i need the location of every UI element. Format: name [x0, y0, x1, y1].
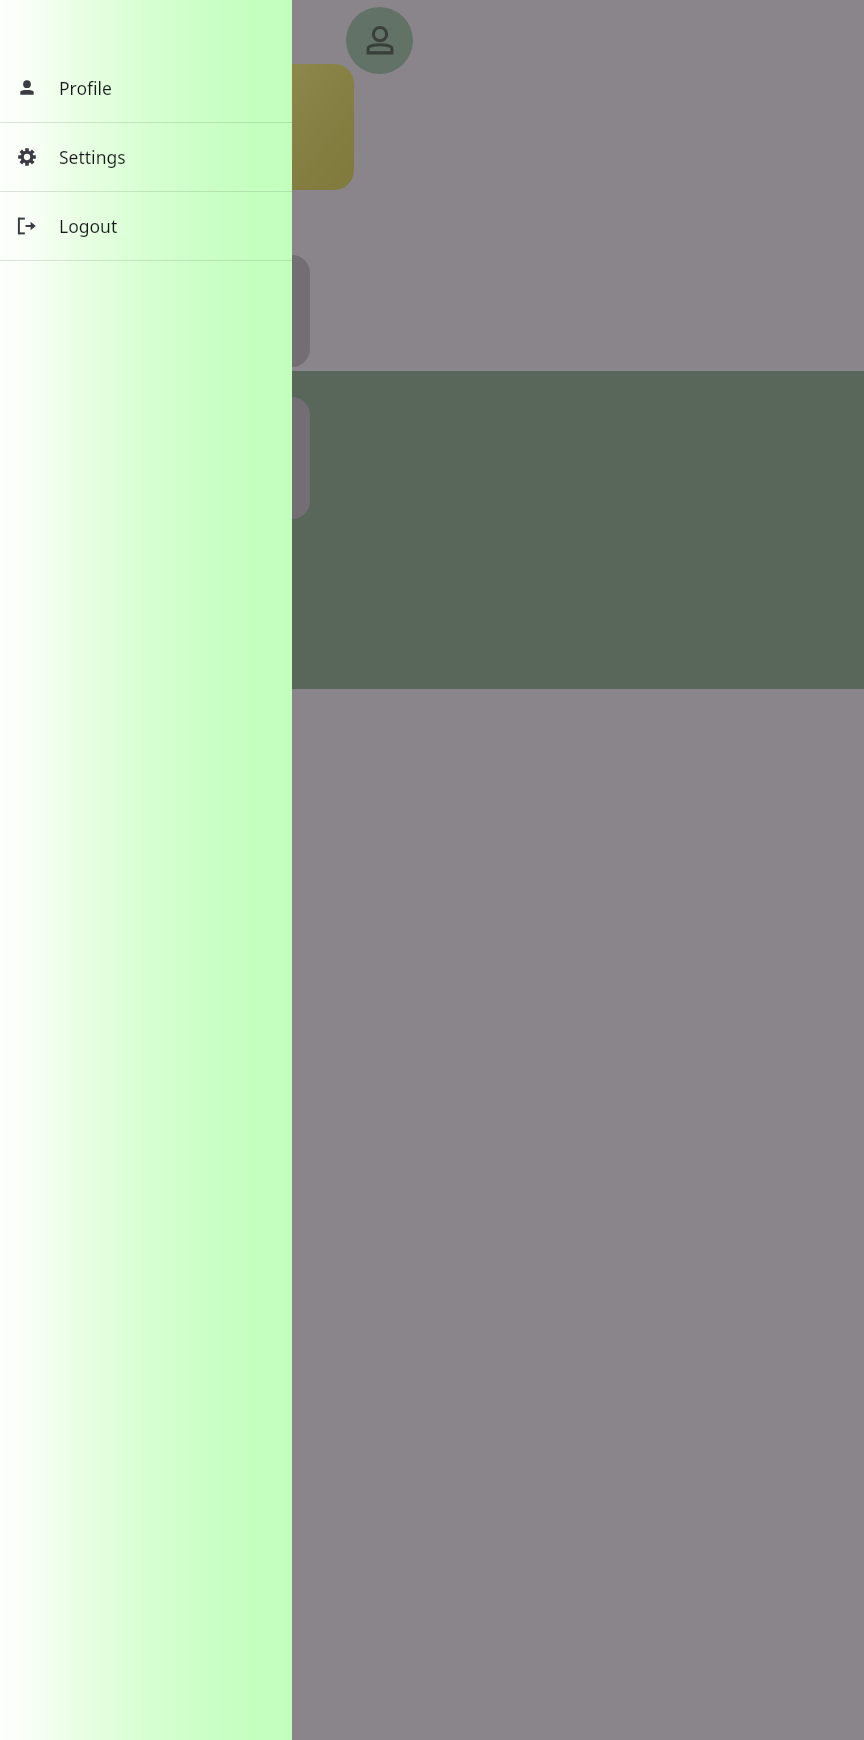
- button[interactable]: Entry: [150, 397, 310, 519]
- staticText: Profile: [59, 76, 112, 100]
- button[interactable]: Logout: [0, 192, 292, 260]
- button[interactable]: Account: [346, 7, 413, 74]
- button[interactable]: Settings: [0, 123, 292, 191]
- button[interactable]: Home Balance: [150, 255, 310, 367]
- staticText: Settings: [59, 145, 126, 169]
- button[interactable]: Profile: [0, 54, 292, 122]
- staticText: Home Balance: [189, 284, 272, 339]
- button[interactable]: QR pass: [188, 64, 354, 190]
- staticText: Logout: [59, 214, 118, 238]
